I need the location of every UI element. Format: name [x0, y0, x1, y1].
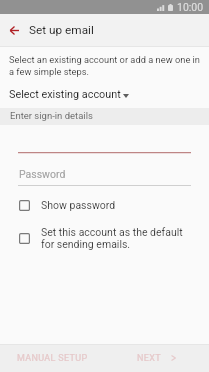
staticText: Password [19, 168, 66, 180]
staticText: NEXT [137, 353, 161, 364]
button[interactable]: Show password [0, 199, 209, 211]
staticText: Set up email [29, 23, 94, 37]
staticText: MANUAL SETUP [17, 353, 88, 364]
staticText: Set this account as the default for send… [41, 226, 183, 251]
staticText: 10:00 [177, 1, 204, 13]
button[interactable]: Navigate up [1, 14, 28, 47]
staticText: Enter sign-in details [10, 110, 93, 121]
button[interactable]: MANUAL SETUP [0, 344, 104, 372]
staticText: Select existing account [9, 88, 121, 101]
button[interactable]: NEXT [104, 344, 209, 372]
button[interactable]: Select existing account [0, 84, 209, 104]
button[interactable]: Set this account as the default for send… [0, 226, 209, 251]
staticText: Show password [41, 199, 116, 211]
staticText: Select an existing account or add a new … [9, 54, 202, 78]
